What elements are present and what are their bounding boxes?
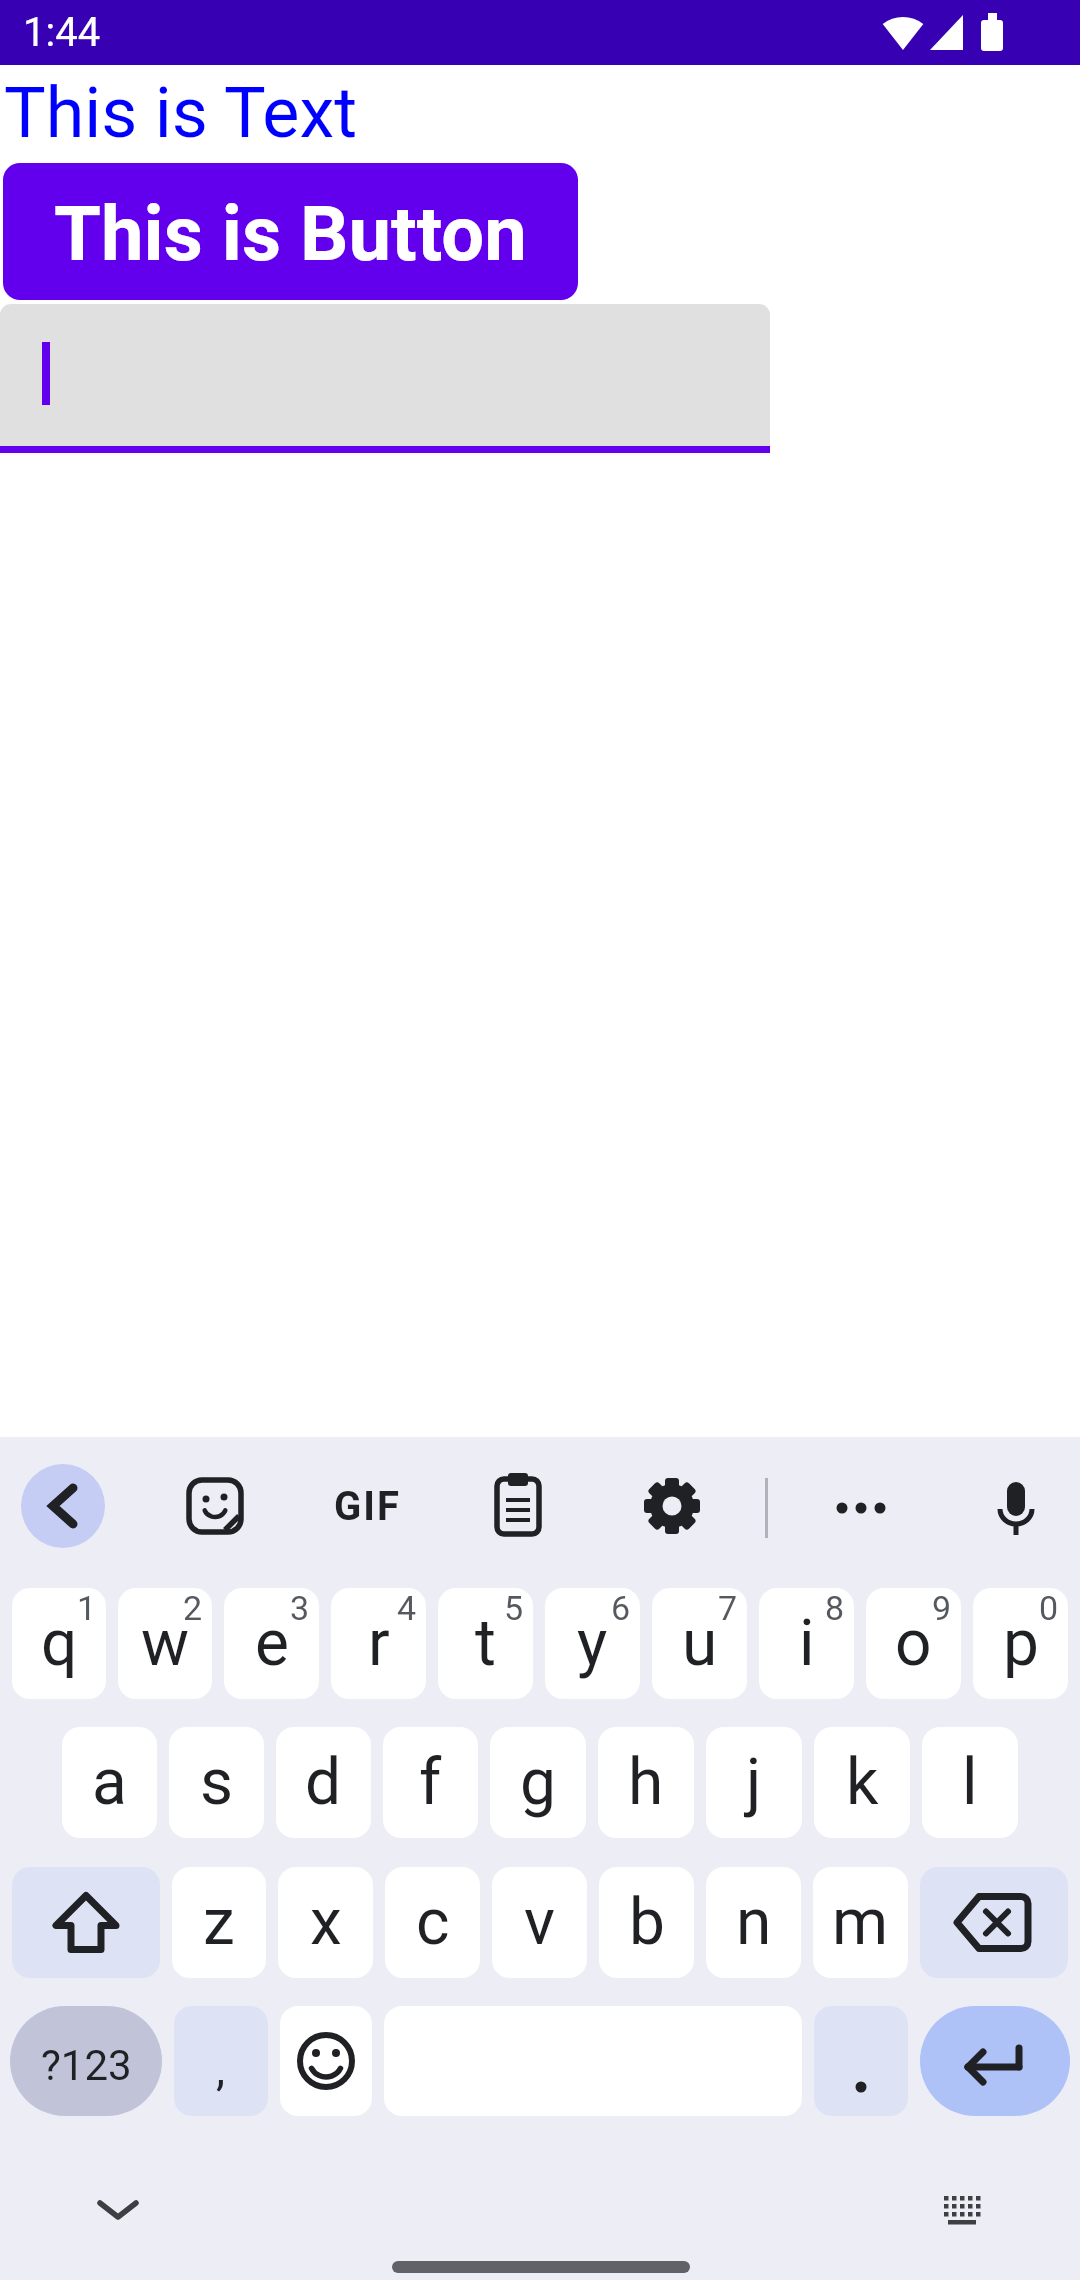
button[interactable]: z bbox=[172, 1867, 266, 1978]
button[interactable]: w bbox=[118, 1588, 212, 1699]
staticText: b bbox=[629, 1885, 665, 1960]
staticText: 2 bbox=[183, 1588, 203, 1628]
staticText: 1 bbox=[77, 1588, 97, 1628]
button[interactable] bbox=[476, 1464, 560, 1548]
button[interactable] bbox=[76, 2175, 160, 2245]
button[interactable]: h bbox=[598, 1727, 694, 1838]
button[interactable]: , bbox=[174, 2006, 268, 2116]
staticText: m bbox=[832, 1885, 889, 1960]
button[interactable]: GIF bbox=[325, 1464, 409, 1548]
button[interactable]: v bbox=[492, 1867, 587, 1978]
button[interactable] bbox=[280, 2006, 372, 2116]
button[interactable] bbox=[173, 1464, 257, 1548]
staticText: 3 bbox=[290, 1588, 310, 1628]
staticText: g bbox=[520, 1745, 556, 1820]
staticText: x bbox=[310, 1885, 342, 1960]
staticText: , bbox=[216, 2042, 226, 2096]
button[interactable] bbox=[819, 1464, 903, 1548]
staticText: y bbox=[577, 1606, 608, 1681]
button[interactable]: ?123 bbox=[10, 2006, 162, 2116]
button[interactable]: g bbox=[490, 1727, 586, 1838]
staticText: 7 bbox=[718, 1588, 738, 1628]
staticText: k bbox=[846, 1745, 879, 1820]
button[interactable]: j bbox=[706, 1727, 802, 1838]
staticText: i bbox=[799, 1606, 815, 1681]
staticText: 9 bbox=[932, 1588, 952, 1628]
staticText: l bbox=[962, 1745, 978, 1820]
staticText: ?123 bbox=[41, 2041, 132, 2090]
staticText: v bbox=[524, 1885, 555, 1960]
button[interactable] bbox=[12, 1867, 160, 1978]
button[interactable]: y bbox=[545, 1588, 640, 1699]
staticText: This is Button bbox=[54, 189, 527, 278]
staticText: 6 bbox=[611, 1588, 631, 1628]
button[interactable]: p bbox=[973, 1588, 1068, 1699]
button[interactable]: n bbox=[706, 1867, 801, 1978]
staticText: t bbox=[475, 1606, 496, 1681]
button[interactable] bbox=[974, 1464, 1058, 1548]
button[interactable] bbox=[920, 2175, 1004, 2245]
button[interactable]: l bbox=[922, 1727, 1018, 1838]
staticText: a bbox=[92, 1745, 127, 1820]
button[interactable]: b bbox=[599, 1867, 694, 1978]
button[interactable]: r bbox=[331, 1588, 426, 1699]
staticText: 8 bbox=[825, 1588, 845, 1628]
staticText: w bbox=[141, 1606, 190, 1681]
staticText: f bbox=[419, 1745, 442, 1820]
staticText: 1:44 bbox=[23, 9, 101, 56]
button[interactable]: u bbox=[652, 1588, 747, 1699]
staticText: q bbox=[41, 1606, 78, 1681]
button[interactable] bbox=[21, 1464, 105, 1548]
button[interactable]: This is Button bbox=[3, 163, 578, 300]
button[interactable] bbox=[920, 1867, 1068, 1978]
staticText: s bbox=[200, 1745, 234, 1820]
button[interactable] bbox=[814, 2006, 908, 2116]
button[interactable] bbox=[920, 2006, 1070, 2116]
staticText: 4 bbox=[397, 1588, 417, 1628]
staticText: c bbox=[416, 1885, 450, 1960]
button[interactable]: s bbox=[169, 1727, 264, 1838]
button[interactable]: k bbox=[814, 1727, 910, 1838]
staticText: p bbox=[1003, 1606, 1039, 1681]
button[interactable] bbox=[0, 304, 770, 446]
button[interactable]: f bbox=[383, 1727, 478, 1838]
staticText: GIF bbox=[334, 1483, 401, 1530]
staticText: n bbox=[736, 1885, 772, 1960]
button[interactable]: o bbox=[866, 1588, 961, 1699]
staticText: d bbox=[305, 1745, 342, 1820]
staticText: j bbox=[746, 1745, 762, 1820]
button[interactable]: a bbox=[62, 1727, 157, 1838]
staticText: 0 bbox=[1039, 1588, 1059, 1628]
staticText: h bbox=[628, 1745, 664, 1820]
button[interactable]: t bbox=[438, 1588, 533, 1699]
staticText: o bbox=[895, 1606, 932, 1681]
staticText: e bbox=[255, 1606, 289, 1681]
staticText: z bbox=[203, 1885, 235, 1960]
button[interactable]: x bbox=[278, 1867, 373, 1978]
button[interactable]: c bbox=[385, 1867, 480, 1978]
button[interactable]: d bbox=[276, 1727, 371, 1838]
staticText: This is Text bbox=[4, 72, 358, 154]
staticText: u bbox=[682, 1606, 718, 1681]
button[interactable]: i bbox=[759, 1588, 854, 1699]
staticText: 5 bbox=[504, 1588, 524, 1628]
button[interactable]: e bbox=[224, 1588, 319, 1699]
button[interactable]: m bbox=[813, 1867, 908, 1978]
button[interactable]: q bbox=[12, 1588, 106, 1699]
staticText: r bbox=[368, 1606, 390, 1681]
button[interactable] bbox=[630, 1464, 714, 1548]
